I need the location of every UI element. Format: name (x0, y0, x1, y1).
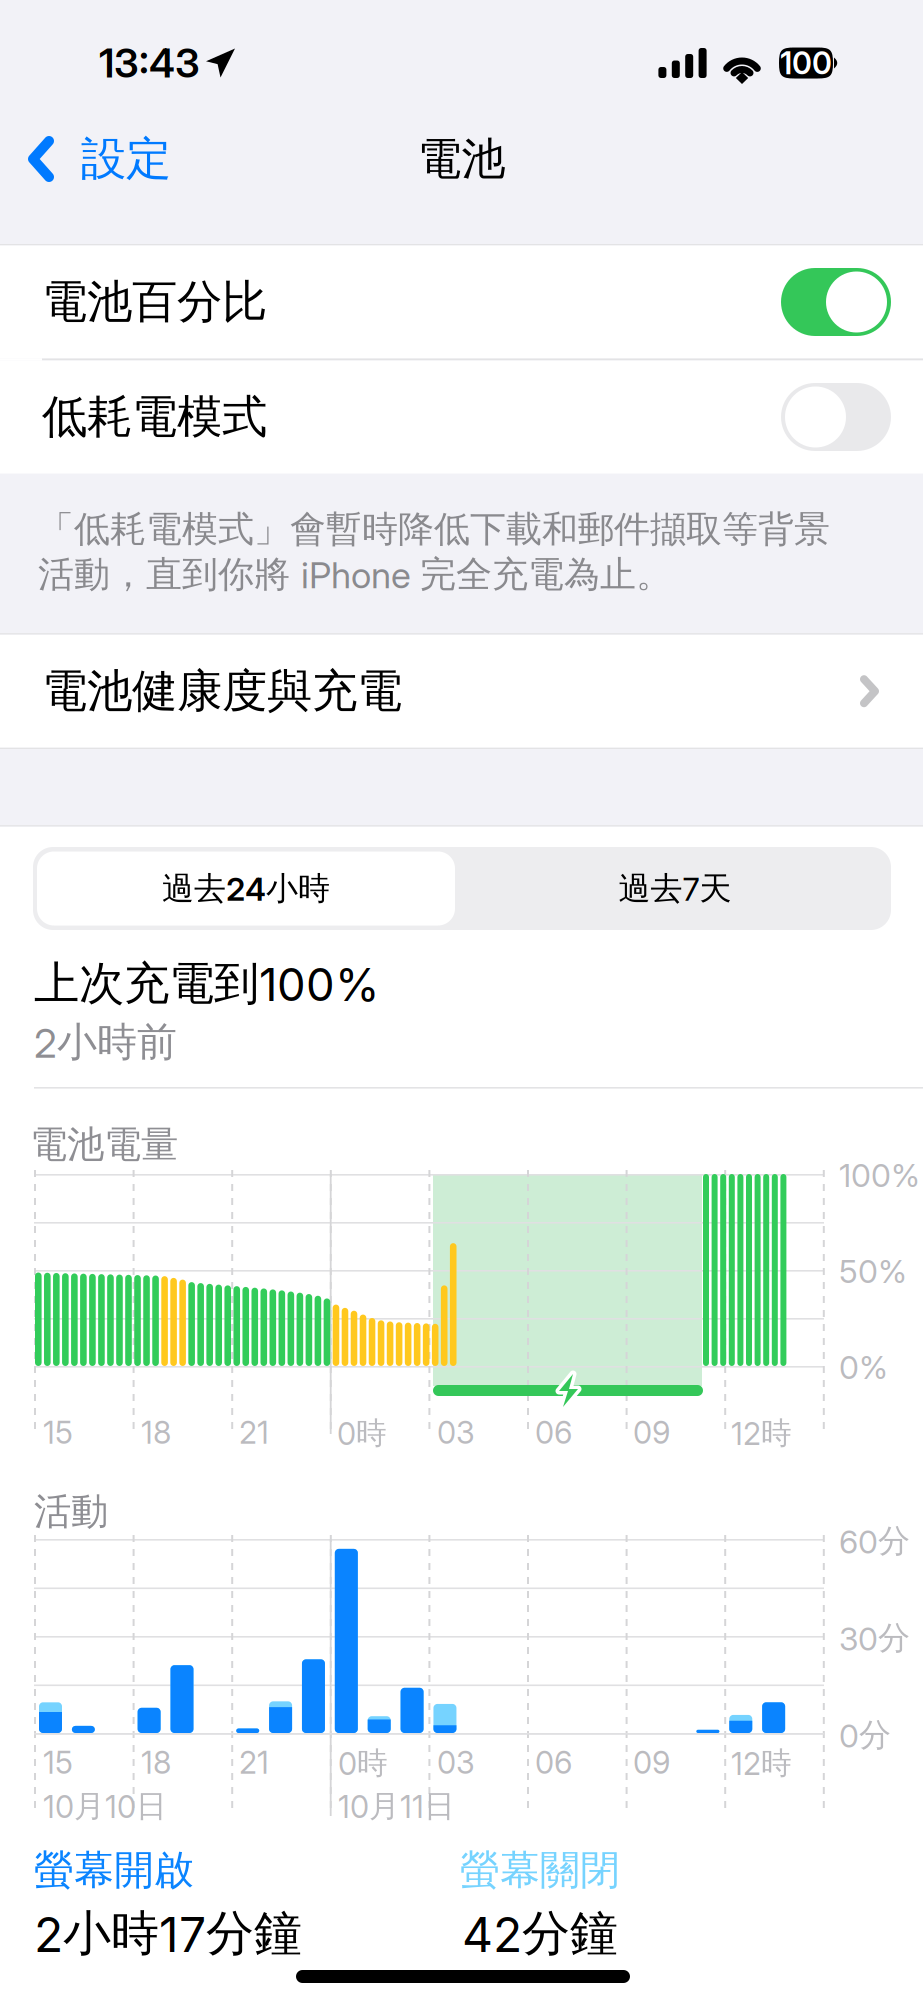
staticText: 100 (780, 44, 832, 81)
staticText: 18 (141, 1744, 171, 1781)
button[interactable]: 低耗電模式 (0, 360, 923, 473)
staticText: 電池健康度與充電 (42, 663, 402, 720)
staticText: 0分 (839, 1715, 891, 1755)
staticText: 「低耗電模式」會暫時降低下載和郵件擷取等背景 (38, 506, 830, 552)
staticText: 0% (839, 1348, 888, 1387)
staticText: 2小時17分鐘 (34, 1903, 302, 1964)
staticText: 螢幕開啟 (34, 1845, 194, 1895)
staticText: 2小時前 (34, 1017, 177, 1067)
button[interactable]: 電池百分比 (0, 245, 923, 358)
staticText: 13:43 (99, 39, 200, 87)
button[interactable]: 電池健康度與充電 (0, 635, 923, 748)
staticText: 10月11日 (338, 1787, 455, 1826)
staticText: 60分 (839, 1521, 910, 1561)
staticText: 過去24小時 (162, 868, 330, 909)
staticText: 15 (43, 1744, 73, 1781)
staticText: 電池百分比 (42, 273, 267, 330)
staticText: 03 (437, 1414, 475, 1451)
staticText: 21 (239, 1744, 269, 1781)
staticText: 100% (839, 1156, 920, 1195)
staticText: 過去7天 (618, 868, 731, 909)
staticText: 15 (43, 1414, 73, 1451)
staticText: 06 (535, 1414, 572, 1451)
staticText: 03 (437, 1744, 475, 1781)
staticText: 10月10日 (43, 1787, 167, 1826)
staticText: 電池電量 (30, 1121, 178, 1168)
staticText: 18 (141, 1414, 171, 1451)
staticText: 06 (535, 1744, 572, 1781)
staticText: 上次充電到100% (34, 955, 380, 1012)
button[interactable]: 過去24小時 (33, 847, 459, 930)
staticText: 活動，直到你將 iPhone 完全充電為止。 (38, 552, 672, 597)
staticText: 設定 (81, 130, 171, 187)
staticText: 09 (633, 1414, 670, 1451)
staticText: 30分 (839, 1618, 910, 1658)
staticText: 42分鐘 (462, 1903, 618, 1964)
staticText: 0時 (338, 1744, 388, 1783)
button[interactable]: 設定 (0, 115, 189, 215)
staticText: 50% (839, 1252, 907, 1291)
staticText: 09 (633, 1744, 670, 1781)
staticText: 12時 (731, 1744, 792, 1783)
staticText: 活動 (34, 1488, 108, 1535)
staticText: 螢幕關閉 (460, 1845, 620, 1895)
staticText: 電池 (417, 131, 505, 187)
staticText: 低耗電模式 (42, 388, 267, 445)
staticText: 0時 (337, 1414, 387, 1453)
staticText: 21 (239, 1414, 269, 1451)
staticText: 12時 (731, 1414, 792, 1453)
button[interactable]: 過去7天 (459, 847, 891, 930)
